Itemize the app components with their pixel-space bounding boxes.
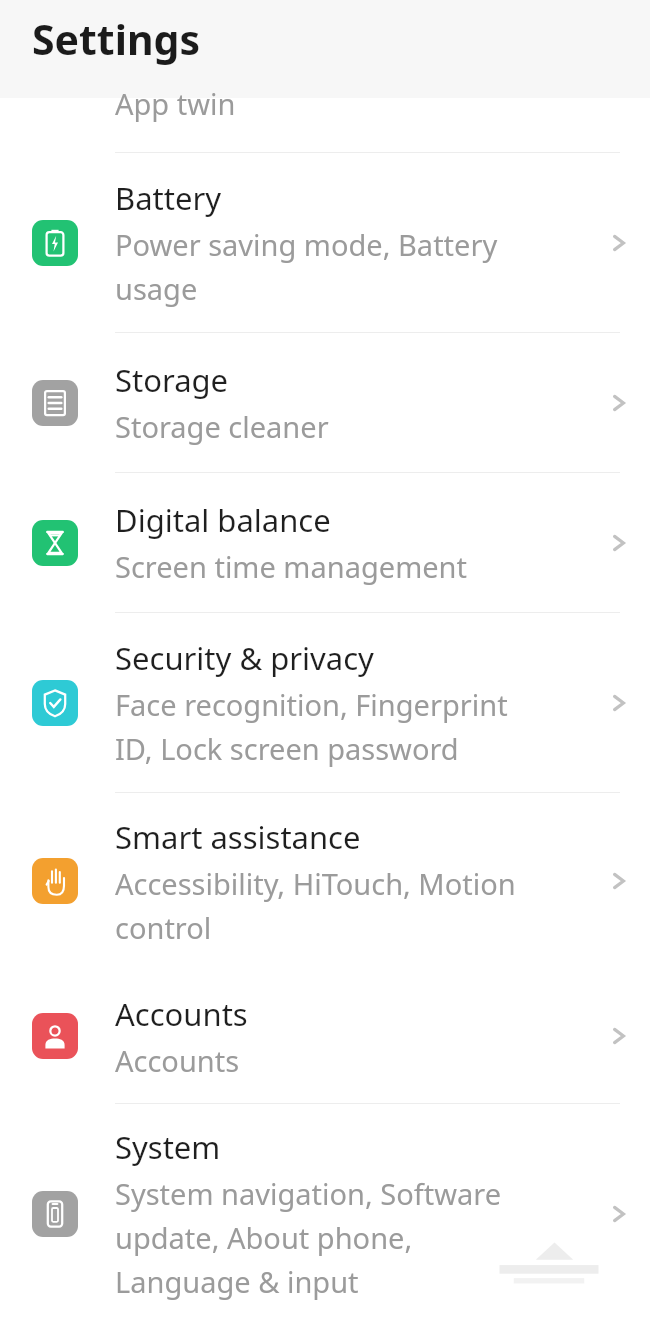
button[interactable]: App twin (0, 98, 650, 152)
button[interactable]: Open Digital balance (588, 473, 650, 612)
staticText: Power saving mode, Battery usage (115, 225, 545, 308)
staticText: Storage cleaner (115, 407, 545, 446)
button[interactable]: Digital balance (0, 473, 650, 612)
staticText: Settings (32, 11, 201, 67)
staticText: Smart assistance (115, 816, 361, 858)
button[interactable]: Battery (0, 153, 650, 332)
button[interactable]: Security & privacy (0, 613, 650, 792)
staticText: App twin (115, 84, 236, 123)
button[interactable]: Open Smart assistance (588, 793, 650, 969)
button[interactable]: Open Accounts (588, 969, 650, 1103)
staticText: Accounts (115, 1041, 545, 1080)
staticText: Digital balance (115, 499, 331, 541)
staticText: Face recognition, Fingerprint ID, Lock s… (115, 685, 545, 768)
staticText: Security & privacy (115, 637, 374, 679)
button[interactable]: Accounts (0, 969, 650, 1103)
button[interactable]: System (0, 1104, 650, 1323)
button[interactable]: Open Security & privacy (588, 613, 650, 792)
button[interactable]: Open System (588, 1104, 650, 1323)
button[interactable]: Open Battery (588, 153, 650, 332)
staticText: Storage (115, 359, 229, 401)
staticText: Accessibility, HiTouch, Motion control (115, 864, 545, 947)
button[interactable]: Open Storage (588, 333, 650, 472)
staticText: Accounts (115, 993, 248, 1035)
staticText: System navigation, Software update, Abou… (115, 1174, 545, 1301)
staticText: Battery (115, 177, 222, 219)
staticText: Screen time management (115, 547, 545, 586)
button[interactable]: Storage (0, 333, 650, 472)
staticText: System (115, 1126, 221, 1168)
button[interactable]: Smart assistance (0, 793, 650, 969)
